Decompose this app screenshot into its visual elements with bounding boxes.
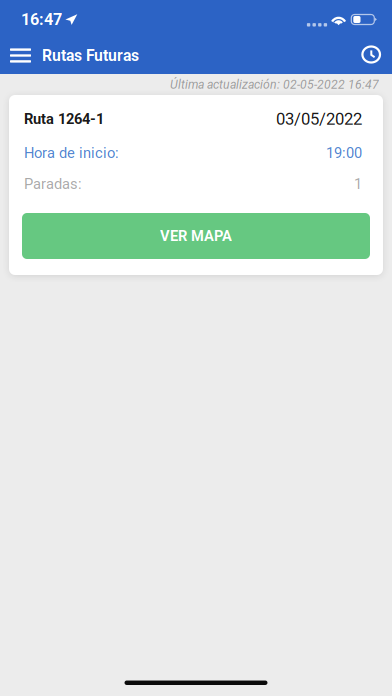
staticText: Ruta 1264-1 [24,110,104,128]
button[interactable]: VER MAPA [22,213,370,259]
staticText: Hora de inicio: [24,144,119,162]
staticText: Última actualización: 02-05-2022 16:47 [170,77,379,92]
staticText: Rutas Futuras [42,46,139,65]
staticText: 1 [354,175,362,193]
staticText: 03/05/2022 [276,109,362,129]
button[interactable]: Recent routes [352,37,390,73]
staticText: 19:00 [326,144,362,162]
staticText: VER MAPA [160,227,232,245]
staticText: 16:47 [21,10,62,29]
button[interactable]: Menu [0,38,41,72]
staticText: Paradas: [24,175,82,193]
